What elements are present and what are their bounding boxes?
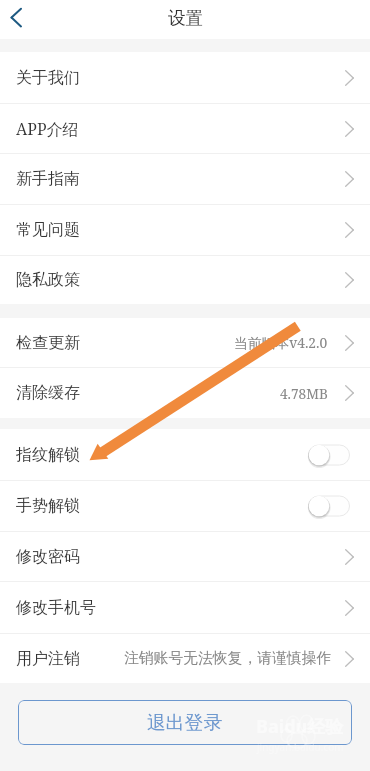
staticText: 注销账号无法恢复，请谨慎操作 <box>124 649 332 668</box>
staticText: 清除缓存 <box>16 383 80 403</box>
staticText: 指纹解锁 <box>16 445 80 465</box>
staticText: jingyan.baidu.com <box>257 740 344 754</box>
button[interactable]: 修改手机号 <box>0 582 370 633</box>
staticText: 新手指南 <box>16 169 80 189</box>
staticText: 关于我们 <box>16 68 80 88</box>
button[interactable]: 修改密码 <box>0 532 370 581</box>
staticText: 隐私政策 <box>16 270 80 290</box>
button[interactable]: 手势解锁 <box>0 481 370 531</box>
button[interactable]: 关于我们 <box>0 52 370 103</box>
staticText: 当前版本v4.2.0 <box>234 333 328 352</box>
button[interactable]: 清除缓存 <box>0 368 370 418</box>
staticText: 用户注销 <box>16 649 80 669</box>
button[interactable]: 隐私政策 <box>0 256 370 304</box>
staticText: 退出登录 <box>147 711 223 735</box>
staticText: 修改手机号 <box>16 598 96 618</box>
button[interactable]: APP介绍 <box>0 104 370 153</box>
staticText: 设置 <box>168 7 203 29</box>
staticText: APP介绍 <box>16 118 79 140</box>
button[interactable]: 用户注销 <box>0 634 370 683</box>
staticText: 4.78MB <box>280 384 328 403</box>
button[interactable]: 指纹解锁 <box>0 429 370 480</box>
staticText: 常见问题 <box>16 220 80 240</box>
staticText: 手势解锁 <box>16 496 80 516</box>
button[interactable]: 检查更新 <box>0 318 370 367</box>
button[interactable]: 新手指南 <box>0 154 370 204</box>
staticText: 修改密码 <box>16 547 80 567</box>
button[interactable]: Back <box>0 0 44 39</box>
button[interactable]: 退出登录 <box>18 700 352 745</box>
button[interactable]: 常见问题 <box>0 205 370 255</box>
staticText: 检查更新 <box>16 333 80 353</box>
